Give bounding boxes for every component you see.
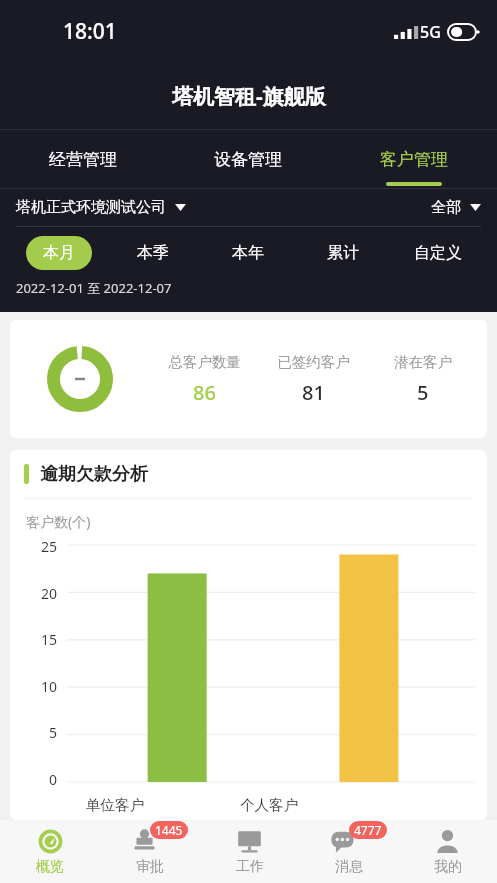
button[interactable]: 审批	[100, 820, 200, 883]
button[interactable]: 客户管理	[331, 130, 497, 188]
staticText: 我的	[434, 858, 462, 876]
staticText: 累计	[327, 243, 359, 263]
staticText: 消息	[335, 858, 363, 876]
button[interactable]: 概览	[0, 820, 100, 883]
staticText: 潜在客户	[394, 353, 452, 371]
staticText: 个人客户	[240, 796, 298, 814]
staticText: 审批	[136, 858, 164, 876]
staticText: 18:01	[63, 17, 117, 46]
button[interactable]: 本季	[120, 236, 186, 270]
button[interactable]: 累计	[310, 236, 376, 270]
staticText: 塔机智租-旗舰版	[172, 82, 326, 111]
button[interactable]: 已签约客户	[259, 353, 368, 406]
staticText: 0	[49, 770, 58, 789]
staticText: 概览	[36, 858, 64, 876]
button[interactable]: 设备管理	[165, 130, 331, 188]
staticText: 25	[41, 537, 58, 556]
button[interactable]: 自定义	[397, 236, 479, 270]
staticText: 设备管理	[214, 149, 282, 170]
staticText: 15	[41, 630, 58, 649]
staticText: 2022-12-01 至 2022-12-07	[16, 279, 172, 297]
button[interactable]: 本月	[26, 236, 92, 270]
staticText: 单位客户	[86, 796, 144, 814]
button[interactable]: 总客户数量	[150, 353, 259, 406]
staticText: 已签约客户	[277, 353, 350, 371]
button[interactable]: 逾期欠款分析	[24, 450, 487, 498]
staticText: 86	[193, 379, 216, 406]
staticText: 本月	[43, 243, 75, 263]
staticText: 逾期欠款分析	[40, 463, 148, 486]
button[interactable]: 我的	[398, 820, 497, 883]
staticText: 20	[41, 584, 58, 603]
staticText: 客户管理	[380, 149, 448, 170]
button[interactable]: 经营管理	[0, 130, 165, 188]
staticText: 客户数(个)	[26, 512, 91, 531]
staticText: 本年	[232, 243, 264, 263]
staticText: 经营管理	[49, 149, 117, 170]
button[interactable]: 本年	[215, 236, 281, 270]
staticText: 塔机正式环境测试公司	[16, 198, 166, 217]
staticText: 5	[417, 379, 429, 406]
staticText: 5	[49, 723, 58, 742]
button[interactable]: 全部	[431, 194, 481, 221]
staticText: 本季	[137, 243, 169, 263]
button[interactable]: 潜在客户	[368, 353, 477, 406]
button[interactable]: 工作	[200, 820, 299, 883]
staticText: 5G	[420, 21, 441, 43]
staticText: 自定义	[414, 243, 462, 263]
staticText: 81	[302, 379, 325, 406]
button[interactable]: 塔机正式环境测试公司	[16, 194, 186, 221]
staticText: 4777	[354, 822, 382, 838]
staticText: 1445	[155, 822, 183, 838]
staticText: 总客户数量	[168, 353, 241, 371]
staticText: 全部	[431, 198, 461, 217]
button[interactable]: 消息	[299, 820, 398, 883]
staticText: 工作	[236, 858, 264, 876]
staticText: 10	[41, 677, 58, 696]
button[interactable]: 总客户数量	[10, 320, 487, 438]
